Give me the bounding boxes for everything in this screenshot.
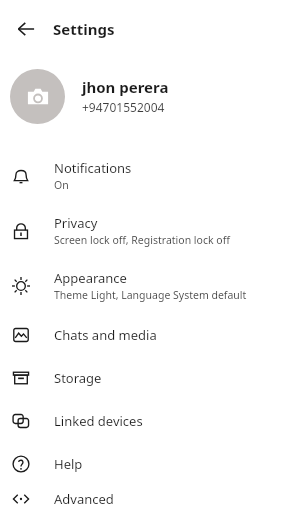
button[interactable]: Notifications — [0, 148, 286, 203]
staticText: On — [54, 178, 69, 192]
button[interactable]: Storage — [0, 356, 286, 399]
button[interactable]: jhon perera — [0, 58, 286, 134]
button[interactable]: Privacy — [0, 203, 286, 258]
staticText: Help — [54, 455, 83, 473]
staticText: Notifications — [54, 159, 132, 177]
staticText: Storage — [54, 369, 102, 387]
button[interactable]: Advanced — [0, 485, 286, 512]
button[interactable]: Help — [0, 442, 286, 485]
staticText: Screen lock off, Registration lock off — [54, 233, 230, 247]
staticText: Appearance — [54, 269, 127, 287]
staticText: Settings — [53, 19, 115, 39]
staticText: Privacy — [54, 214, 98, 232]
button[interactable]: Appearance — [0, 258, 286, 313]
button[interactable]: Chats and media — [0, 313, 286, 356]
staticText: jhon perera — [82, 77, 169, 97]
button[interactable]: Back — [5, 8, 47, 50]
staticText: Advanced — [54, 490, 114, 508]
staticText: Linked devices — [54, 412, 143, 430]
staticText: Theme Light, Language System default — [54, 288, 247, 302]
button[interactable]: Linked devices — [0, 399, 286, 442]
staticText: +94701552004 — [82, 99, 165, 115]
staticText: Chats and media — [54, 326, 157, 344]
